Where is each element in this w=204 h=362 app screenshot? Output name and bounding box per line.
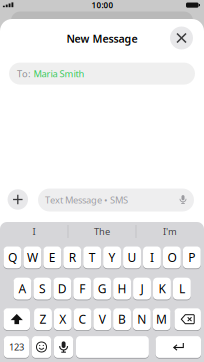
staticText: Q <box>8 249 17 265</box>
button[interactable] <box>156 336 201 358</box>
button[interactable]: L <box>173 277 191 300</box>
button[interactable] <box>170 26 193 49</box>
button[interactable]: F <box>73 277 91 300</box>
button[interactable]: M <box>153 308 171 331</box>
button[interactable]: W <box>23 246 41 269</box>
staticText: Y <box>109 249 116 265</box>
staticText: Text Message • SMS <box>45 194 128 206</box>
button[interactable] <box>76 336 149 358</box>
button[interactable]: N <box>133 308 151 331</box>
staticText: E <box>49 249 56 265</box>
staticText: P <box>188 249 195 265</box>
button[interactable]: P <box>183 246 201 269</box>
staticText: New Message <box>66 31 137 46</box>
button[interactable] <box>54 336 73 358</box>
button[interactable]: Z <box>34 308 52 331</box>
staticText: O <box>167 249 176 265</box>
button[interactable]: Text Message • SMS <box>38 188 194 211</box>
staticText: The <box>94 225 110 238</box>
staticText: Z <box>39 311 46 327</box>
button[interactable]: J <box>133 277 151 300</box>
button[interactable]: T <box>83 246 101 269</box>
button[interactable] <box>174 308 201 331</box>
button[interactable]: V <box>93 308 111 331</box>
button[interactable]: K <box>153 277 171 300</box>
button[interactable]: H <box>113 277 131 300</box>
button[interactable]: U <box>123 246 141 269</box>
staticText: K <box>158 281 165 296</box>
staticText: W <box>27 249 38 265</box>
staticText: N <box>137 311 146 327</box>
staticText: R <box>69 249 76 265</box>
button[interactable]: G <box>93 277 111 300</box>
staticText: U <box>127 249 136 265</box>
button[interactable]: To: <box>9 63 195 85</box>
button[interactable]: Q <box>3 246 21 269</box>
button[interactable]: R <box>63 246 81 269</box>
staticText: H <box>118 281 127 296</box>
staticText: X <box>59 311 66 327</box>
staticText: L <box>179 281 185 296</box>
staticText: To: <box>17 67 31 80</box>
button[interactable]: I <box>143 246 161 269</box>
staticText: 10:00 <box>91 0 113 10</box>
button[interactable]: B <box>113 308 131 331</box>
staticText: T <box>89 249 96 265</box>
button[interactable]: C <box>74 308 91 331</box>
staticText: D <box>58 281 67 296</box>
button[interactable] <box>3 308 30 331</box>
staticText: I <box>150 249 154 265</box>
staticText: M <box>156 311 167 327</box>
staticText: B <box>118 311 126 327</box>
staticText: S <box>39 281 46 296</box>
staticText: F <box>79 281 85 296</box>
button[interactable] <box>32 336 51 358</box>
staticText: I <box>32 225 35 238</box>
button[interactable]: Y <box>103 246 121 269</box>
button[interactable]: 123 <box>4 336 29 358</box>
button[interactable] <box>8 189 28 210</box>
button[interactable]: E <box>43 246 61 269</box>
staticText: J <box>140 281 143 296</box>
staticText: Maria Smith <box>33 67 84 80</box>
button[interactable]: O <box>163 246 181 269</box>
staticText: A <box>18 281 26 296</box>
staticText: G <box>98 281 107 296</box>
staticText: I'm <box>163 225 177 238</box>
button[interactable]: The <box>74 221 130 241</box>
button[interactable]: S <box>33 277 51 300</box>
button[interactable]: I <box>6 221 62 241</box>
staticText: V <box>99 311 106 327</box>
button[interactable]: I'm <box>142 221 198 241</box>
button[interactable]: D <box>53 277 71 300</box>
button[interactable]: X <box>54 308 72 331</box>
staticText: C <box>78 311 86 327</box>
button[interactable]: A <box>13 277 31 300</box>
staticText: 123 <box>9 341 24 353</box>
